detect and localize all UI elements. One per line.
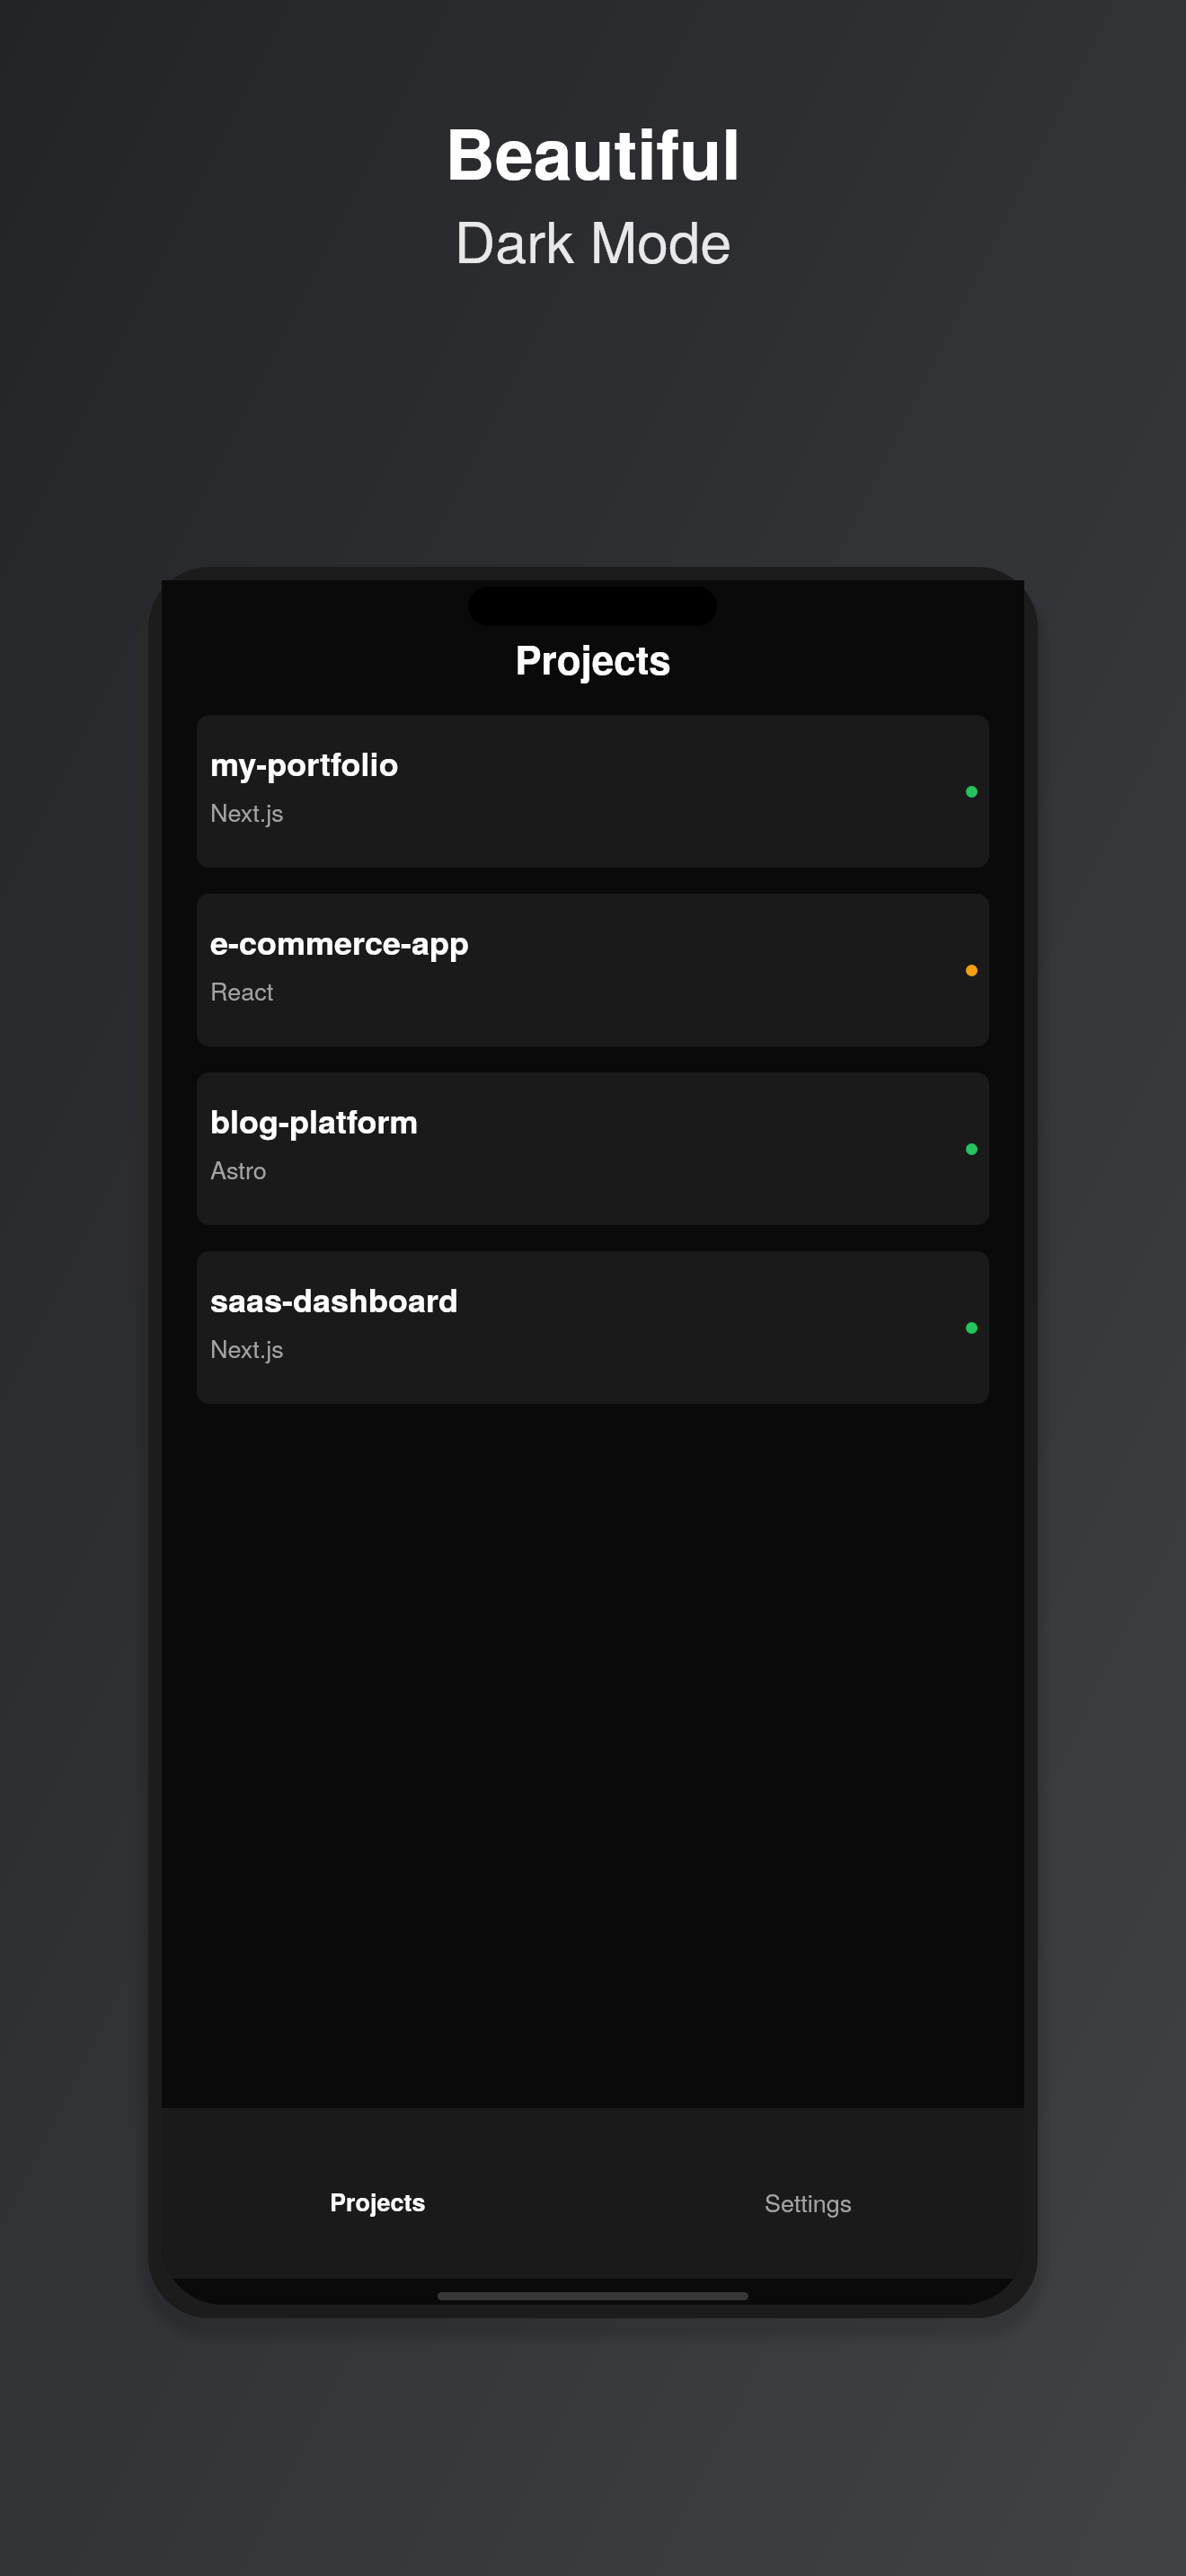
staticText: React — [210, 973, 274, 1008]
other: Build passing — [966, 1143, 978, 1155]
other: Build pending — [966, 965, 978, 976]
staticText: blog-platform — [210, 1097, 419, 1143]
staticText: Astro — [210, 1151, 267, 1187]
button[interactable]: e-commerce-app — [197, 894, 989, 1046]
other: Build passing — [966, 1322, 978, 1334]
other: Build passing — [966, 786, 978, 798]
button[interactable]: saas-dashboard — [197, 1251, 989, 1404]
staticText: Next.js — [210, 1330, 284, 1365]
staticText: Dark Mode — [0, 198, 1186, 279]
staticText: Next.js — [210, 794, 284, 829]
other: Home — [438, 2292, 748, 2300]
staticText: Beautiful — [0, 101, 1186, 200]
staticText: Projects — [330, 2184, 426, 2219]
button[interactable]: Projects — [162, 2108, 593, 2279]
button[interactable]: Settings — [593, 2108, 1024, 2279]
staticText: Settings — [765, 2184, 853, 2219]
staticText: my-portfolio — [210, 739, 399, 786]
staticText: e-commerce-app — [210, 918, 470, 965]
button[interactable]: my-portfolio — [197, 715, 989, 868]
staticText: saas-dashboard — [210, 1275, 459, 1322]
button[interactable]: blog-platform — [197, 1072, 989, 1225]
staticText: Projects — [162, 630, 1024, 686]
